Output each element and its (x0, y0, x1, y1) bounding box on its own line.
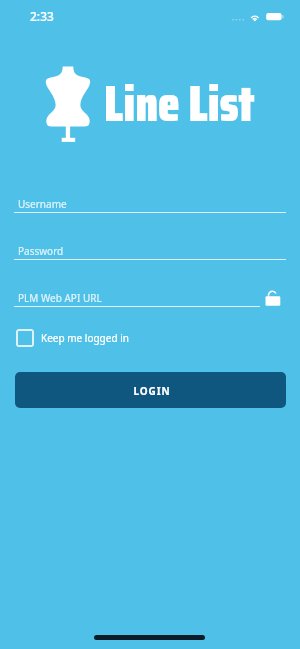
other: Unlocked, toggle secure connection (264, 290, 282, 306)
staticText: LOGIN (133, 384, 171, 398)
staticText: Username (18, 197, 67, 211)
staticText: PLM Web API URL (18, 291, 102, 305)
button[interactable]: LOGIN (15, 372, 286, 408)
staticText: Line List (104, 64, 255, 143)
staticText: Keep me logged in (41, 331, 129, 345)
staticText: Password (18, 244, 64, 258)
button[interactable]: Keep me logged in (16, 329, 129, 347)
staticText: 2:33 (30, 8, 54, 24)
